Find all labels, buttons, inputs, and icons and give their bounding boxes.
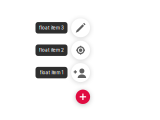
button[interactable]: Locate [71, 41, 90, 60]
button[interactable]: Compose [71, 18, 90, 37]
staticText: float item 3 [39, 25, 64, 31]
button[interactable]: Add person [71, 63, 90, 82]
staticText: float item 1 [39, 70, 63, 75]
staticText: float item 2 [39, 47, 64, 53]
button[interactable]: Add [76, 90, 90, 104]
